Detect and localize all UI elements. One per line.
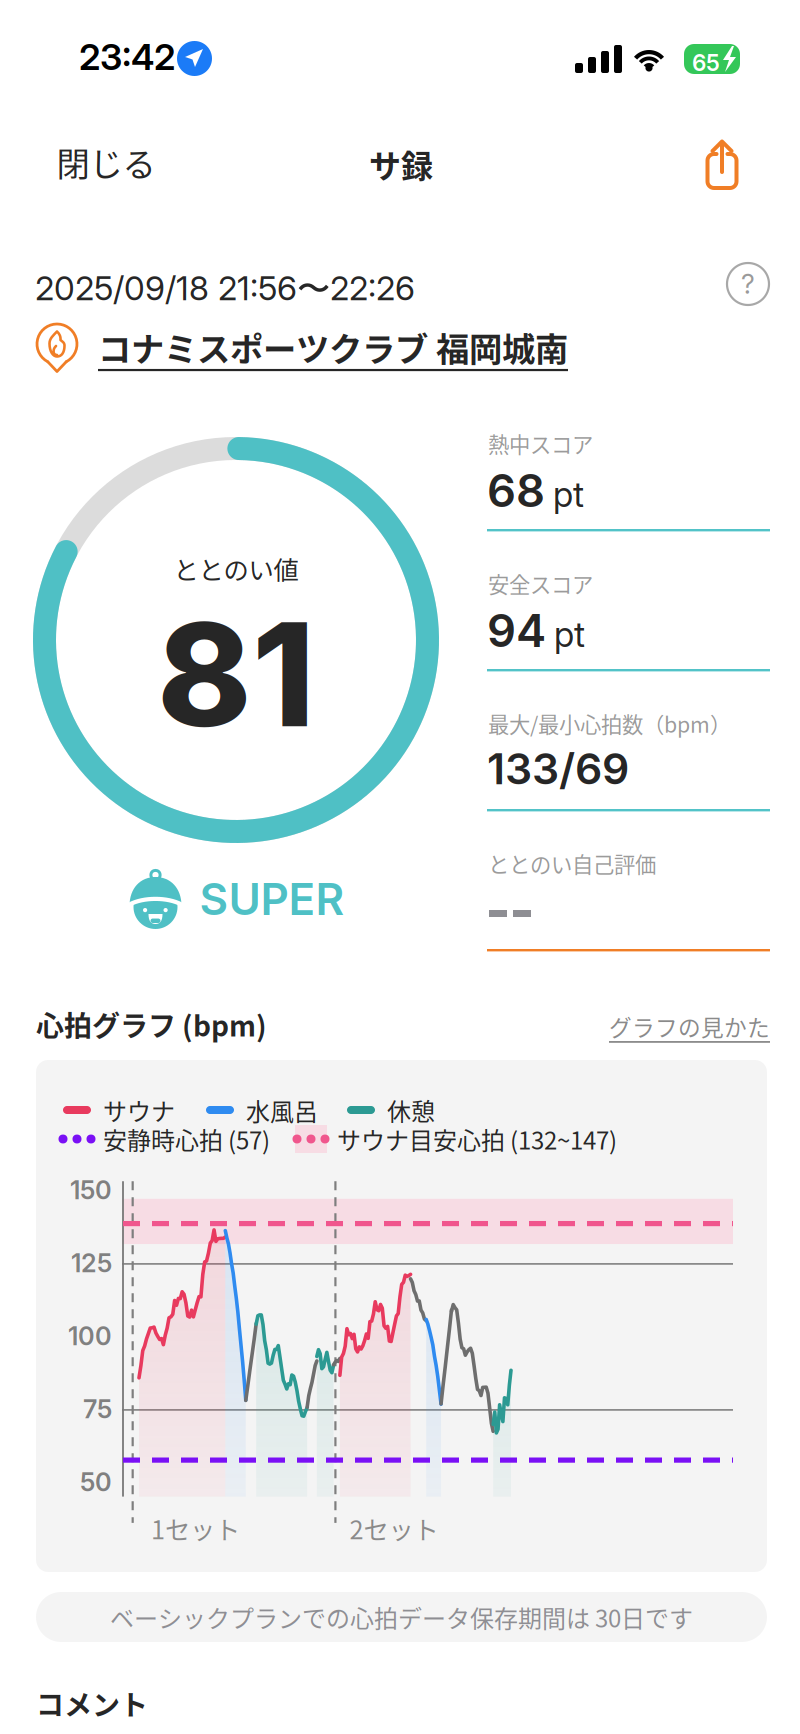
staticText: 94 — [487, 603, 546, 658]
staticText: 休憩 — [387, 1093, 435, 1127]
staticText: サウナ — [103, 1093, 175, 1127]
staticText: 100 — [68, 1321, 112, 1351]
staticText: ととのい自己評価 — [488, 848, 656, 879]
staticText: サ録 — [369, 141, 433, 187]
staticText: 心拍グラフ (bpm) — [36, 1004, 267, 1044]
staticText: 75 — [83, 1394, 112, 1424]
staticText: ? — [741, 268, 755, 300]
button[interactable]: グラフの見かた — [609, 1010, 770, 1043]
staticText: 最大/最小心拍数（bpm） — [488, 708, 731, 739]
staticText: 水風呂 — [246, 1093, 318, 1127]
staticText: SUPER — [199, 872, 344, 926]
staticText: 23:42 — [79, 35, 175, 79]
staticText: 熱中スコア — [488, 428, 593, 459]
button[interactable]: コナミスポーツクラブ 福岡城南 — [34, 321, 568, 373]
staticText: ととのい値 — [173, 550, 298, 587]
staticText: 安静時心拍 (57) — [103, 1122, 270, 1156]
staticText: pt — [553, 473, 584, 515]
staticText: 65 — [692, 49, 720, 76]
staticText: 50 — [80, 1467, 112, 1497]
staticText: 安全スコア — [488, 568, 593, 599]
button[interactable]: Help — [719, 255, 777, 313]
button[interactable]: 閉じる — [33, 123, 179, 201]
staticText: 133/69 — [487, 743, 629, 795]
staticText: グラフの見かた — [609, 1010, 770, 1043]
staticText: コナミスポーツクラブ 福岡城南 — [98, 323, 568, 371]
staticText: 81 — [157, 588, 315, 761]
staticText: 150 — [70, 1175, 112, 1205]
staticText: ベーシックプランでの心拍データ保存期間は 30日です — [110, 1600, 693, 1634]
staticText: 2セット — [350, 1510, 439, 1546]
staticText: pt — [554, 613, 585, 655]
staticText: コメント — [36, 1683, 148, 1723]
staticText: 1セット — [151, 1510, 240, 1546]
staticText: 閉じる — [56, 138, 155, 186]
staticText: 125 — [71, 1248, 112, 1278]
staticText: サウナ目安心拍 (132~147) — [337, 1122, 617, 1156]
staticText: 68 — [487, 463, 545, 518]
staticText: 2025/09/18 21:56〜22:26 — [35, 268, 415, 310]
button[interactable]: Share — [674, 117, 770, 213]
